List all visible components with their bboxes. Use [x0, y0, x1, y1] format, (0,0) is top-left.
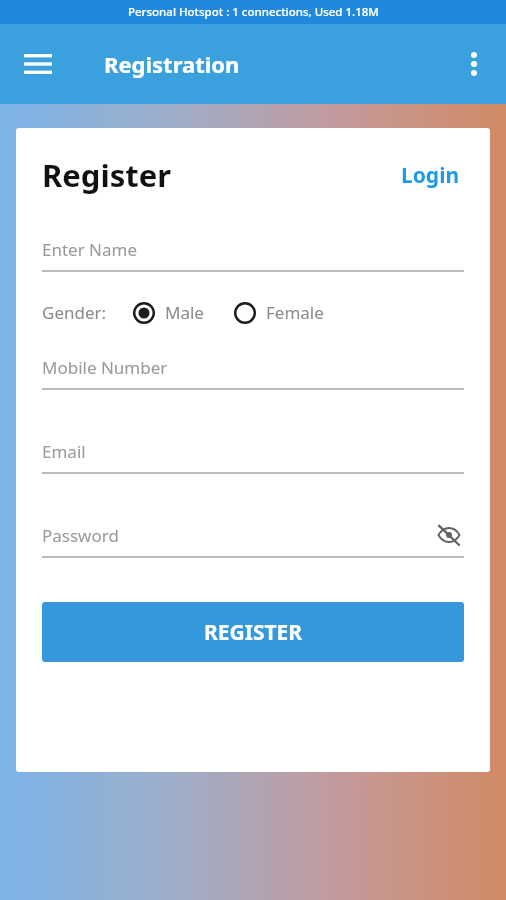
button[interactable]: More options: [450, 40, 498, 88]
button[interactable]: Login: [397, 157, 464, 194]
button[interactable]: Enter Name: [42, 234, 464, 272]
button[interactable]: Email: [42, 436, 464, 474]
staticText: REGISTER: [204, 618, 303, 647]
staticText: Password: [42, 524, 119, 547]
button[interactable]: Show password: [434, 520, 464, 550]
button[interactable]: Password: [42, 520, 464, 558]
staticText: Enter Name: [42, 238, 138, 261]
button[interactable]: Female: [234, 301, 324, 324]
staticText: Mobile Number: [42, 356, 168, 379]
staticText: Email: [42, 440, 86, 463]
button[interactable]: Male: [133, 301, 204, 324]
staticText: Register: [42, 154, 172, 196]
button[interactable]: Mobile Number: [42, 352, 464, 390]
button[interactable]: REGISTER: [42, 602, 464, 662]
staticText: Female: [266, 301, 324, 324]
staticText: Personal Hotspot : 1 connections, Used 1…: [128, 4, 379, 20]
staticText: Login: [401, 161, 460, 190]
staticText: Male: [165, 301, 204, 324]
button[interactable]: Open navigation menu: [12, 38, 64, 90]
staticText: Registration: [104, 49, 240, 79]
staticText: Gender:: [42, 301, 107, 324]
